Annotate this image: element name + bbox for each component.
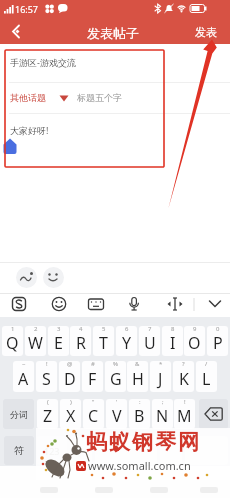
button[interactable]: ( [37, 399, 58, 429]
button[interactable]: 分词 [3, 399, 34, 429]
staticText: A [18, 368, 29, 390]
staticText: % [113, 361, 118, 368]
staticText: S [42, 368, 51, 390]
staticText: 蚂蚁钢琴网 [85, 429, 200, 455]
staticText: X [66, 405, 76, 427]
button[interactable]: 2 [25, 326, 46, 356]
button[interactable]: ~ [13, 361, 34, 392]
button[interactable] [164, 293, 186, 316]
button[interactable]: 4 [70, 326, 91, 356]
staticText: ) [70, 399, 72, 406]
staticText: F [88, 368, 97, 390]
staticText: L [202, 368, 211, 390]
button[interactable]: ? [173, 361, 194, 392]
staticText: 标题五个字 [77, 92, 122, 103]
staticText: 7 [148, 326, 152, 333]
staticText: 4 [79, 326, 83, 333]
button[interactable]: & [127, 361, 148, 392]
button[interactable] [85, 293, 107, 316]
staticText: * [159, 361, 163, 368]
button[interactable]: 3 [48, 326, 69, 356]
staticText: 2 [34, 326, 38, 333]
button[interactable]: 9 [184, 326, 205, 356]
staticText: ! [184, 399, 186, 406]
button[interactable] [185, 436, 228, 465]
button[interactable]: @ [59, 361, 80, 392]
staticText: B [134, 405, 145, 427]
button[interactable]: 5 [93, 326, 114, 356]
staticText: ( [47, 399, 49, 406]
staticText: K [179, 368, 189, 390]
button[interactable]: ; [152, 399, 173, 429]
button[interactable] [6, 20, 30, 44]
staticText: @ [67, 361, 73, 368]
staticText: C [88, 405, 99, 427]
staticText: D [64, 368, 76, 390]
staticText: Z [43, 405, 53, 427]
button[interactable]: ! [36, 361, 57, 392]
staticText: & [135, 361, 140, 368]
staticText: 9 [193, 326, 197, 333]
staticText: / [205, 361, 208, 368]
staticText: W [28, 332, 43, 354]
button[interactable] [199, 399, 228, 429]
button[interactable]: % [105, 361, 126, 392]
staticText: 其他话题 [10, 92, 46, 103]
button[interactable] [204, 293, 226, 316]
button[interactable]: # [82, 361, 103, 392]
staticText: H [132, 368, 144, 390]
staticText: ? [182, 361, 185, 368]
staticText: M [177, 405, 192, 427]
staticText: 手游区-游戏交流 [10, 56, 76, 68]
button[interactable] [0, 50, 230, 82]
staticText: O [188, 332, 201, 354]
staticText: 1 [11, 326, 15, 333]
button[interactable] [16, 267, 37, 288]
staticText: E [54, 332, 63, 354]
button[interactable] [70, 436, 92, 465]
button[interactable] [0, 83, 230, 113]
button[interactable]: ! [174, 399, 195, 429]
button[interactable]: ' [106, 399, 127, 429]
staticText: R [76, 332, 86, 354]
staticText: 6 [125, 326, 129, 333]
staticText: 8 [171, 326, 175, 333]
button[interactable]: : [129, 399, 150, 429]
staticText: 3 [57, 326, 61, 333]
button[interactable]: 0 [207, 326, 228, 356]
staticText: T [99, 332, 108, 354]
button[interactable] [95, 436, 157, 465]
staticText: J [158, 368, 163, 390]
button[interactable]: 123 [37, 436, 67, 465]
staticText: ' [116, 399, 118, 406]
staticText: " [92, 399, 95, 406]
button[interactable]: 8 [162, 326, 183, 356]
button[interactable]: " [83, 399, 104, 429]
staticText: P [213, 332, 223, 354]
staticText: Q [6, 332, 19, 354]
staticText: 符 [14, 444, 24, 457]
button[interactable] [8, 293, 30, 316]
button[interactable]: / [196, 361, 217, 392]
button[interactable]: 1 [2, 326, 23, 356]
button[interactable]: 7 [139, 326, 160, 356]
staticText: www.somall.com.cn [88, 458, 191, 473]
staticText: ~ [22, 361, 26, 368]
button[interactable]: 符 [4, 436, 34, 465]
button[interactable] [160, 436, 182, 465]
button[interactable] [43, 267, 64, 288]
button[interactable]: 6 [116, 326, 137, 356]
staticText: ; [162, 399, 164, 406]
button[interactable]: ) [60, 399, 81, 429]
staticText: U [144, 332, 156, 354]
button[interactable]: 发表 [190, 20, 226, 44]
staticText: G [110, 368, 122, 390]
staticText: 16:57 [15, 3, 39, 15]
button[interactable] [48, 293, 70, 316]
staticText: # [91, 361, 95, 368]
staticText: 发表帖子 [87, 25, 139, 41]
button[interactable] [123, 293, 145, 316]
staticText: 大家好呀! [10, 124, 49, 136]
button[interactable]: * [150, 361, 171, 392]
staticText: I [170, 332, 176, 354]
